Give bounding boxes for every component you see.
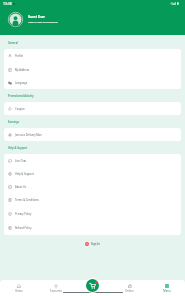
staticText: General	[8, 41, 18, 45]
button[interactable]: Favourite	[37, 280, 74, 296]
button[interactable]: Join as a Delivery Man	[4, 128, 181, 141]
staticText: Refund Policy	[15, 226, 32, 230]
button[interactable]: Cart	[85, 278, 100, 293]
button[interactable]: Menu	[148, 280, 185, 296]
staticText: Login to view all the features	[28, 21, 59, 24]
button[interactable]: About Us	[4, 180, 181, 193]
staticText: Menu	[163, 289, 171, 293]
staticText: Help & Support	[15, 172, 34, 176]
staticText: Sign In	[91, 242, 100, 246]
staticText: Home	[15, 289, 23, 293]
staticText: About Us	[15, 185, 27, 189]
button[interactable]: Privacy Policy	[4, 207, 181, 221]
staticText: Privacy Policy	[15, 212, 32, 216]
staticText: My Address	[15, 68, 30, 72]
staticText: Language	[15, 81, 28, 85]
staticText: Terms & Conditions	[15, 198, 39, 202]
button[interactable]: Help & Support	[4, 167, 181, 180]
button[interactable]: My Address	[4, 63, 181, 76]
staticText: 13:38	[3, 1, 12, 6]
staticText: Join as a Delivery Man	[15, 133, 42, 137]
button[interactable]: Coupon	[4, 102, 181, 115]
button[interactable]: Profile	[4, 49, 181, 63]
button[interactable]: Terms & Conditions	[4, 193, 181, 207]
button[interactable]: Home	[0, 280, 37, 296]
button[interactable]: Language	[4, 76, 181, 89]
button[interactable]: Refund Policy	[4, 221, 181, 235]
staticText: Profile	[15, 54, 23, 58]
staticText: Guest User	[28, 15, 45, 19]
button[interactable]: Live Chat	[4, 154, 181, 167]
button[interactable]: Sign In	[80, 240, 105, 248]
staticText: Help & Support	[8, 146, 28, 150]
staticText: Promotional Activity	[8, 94, 34, 98]
staticText: Earnings	[8, 120, 20, 124]
staticText: Favourite	[50, 289, 62, 293]
staticText: Orders	[125, 289, 134, 293]
button[interactable]: Orders	[111, 280, 148, 296]
staticText: Live Chat	[15, 159, 27, 163]
staticText: Coupon	[15, 107, 25, 111]
